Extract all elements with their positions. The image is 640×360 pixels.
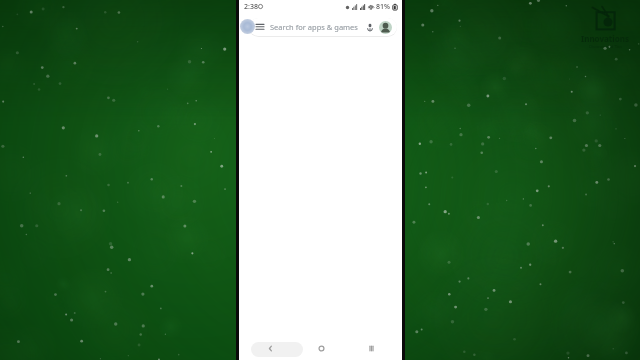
staticText: Search for apps & games xyxy=(270,22,364,32)
button[interactable]: Account profile xyxy=(379,21,392,34)
button[interactable]: Open navigation menu xyxy=(249,18,397,36)
staticText: Discover and Tips xyxy=(589,44,622,48)
button[interactable]: Search by voice xyxy=(364,21,376,33)
staticText: 2:38 xyxy=(244,2,258,12)
staticText: Innovations xyxy=(581,33,629,44)
button[interactable]: Home xyxy=(296,336,346,360)
button[interactable]: Open navigation menu xyxy=(254,21,266,33)
button[interactable]: Back xyxy=(245,336,296,360)
staticText: 81% xyxy=(376,2,390,12)
button[interactable]: Recent apps xyxy=(346,336,396,360)
